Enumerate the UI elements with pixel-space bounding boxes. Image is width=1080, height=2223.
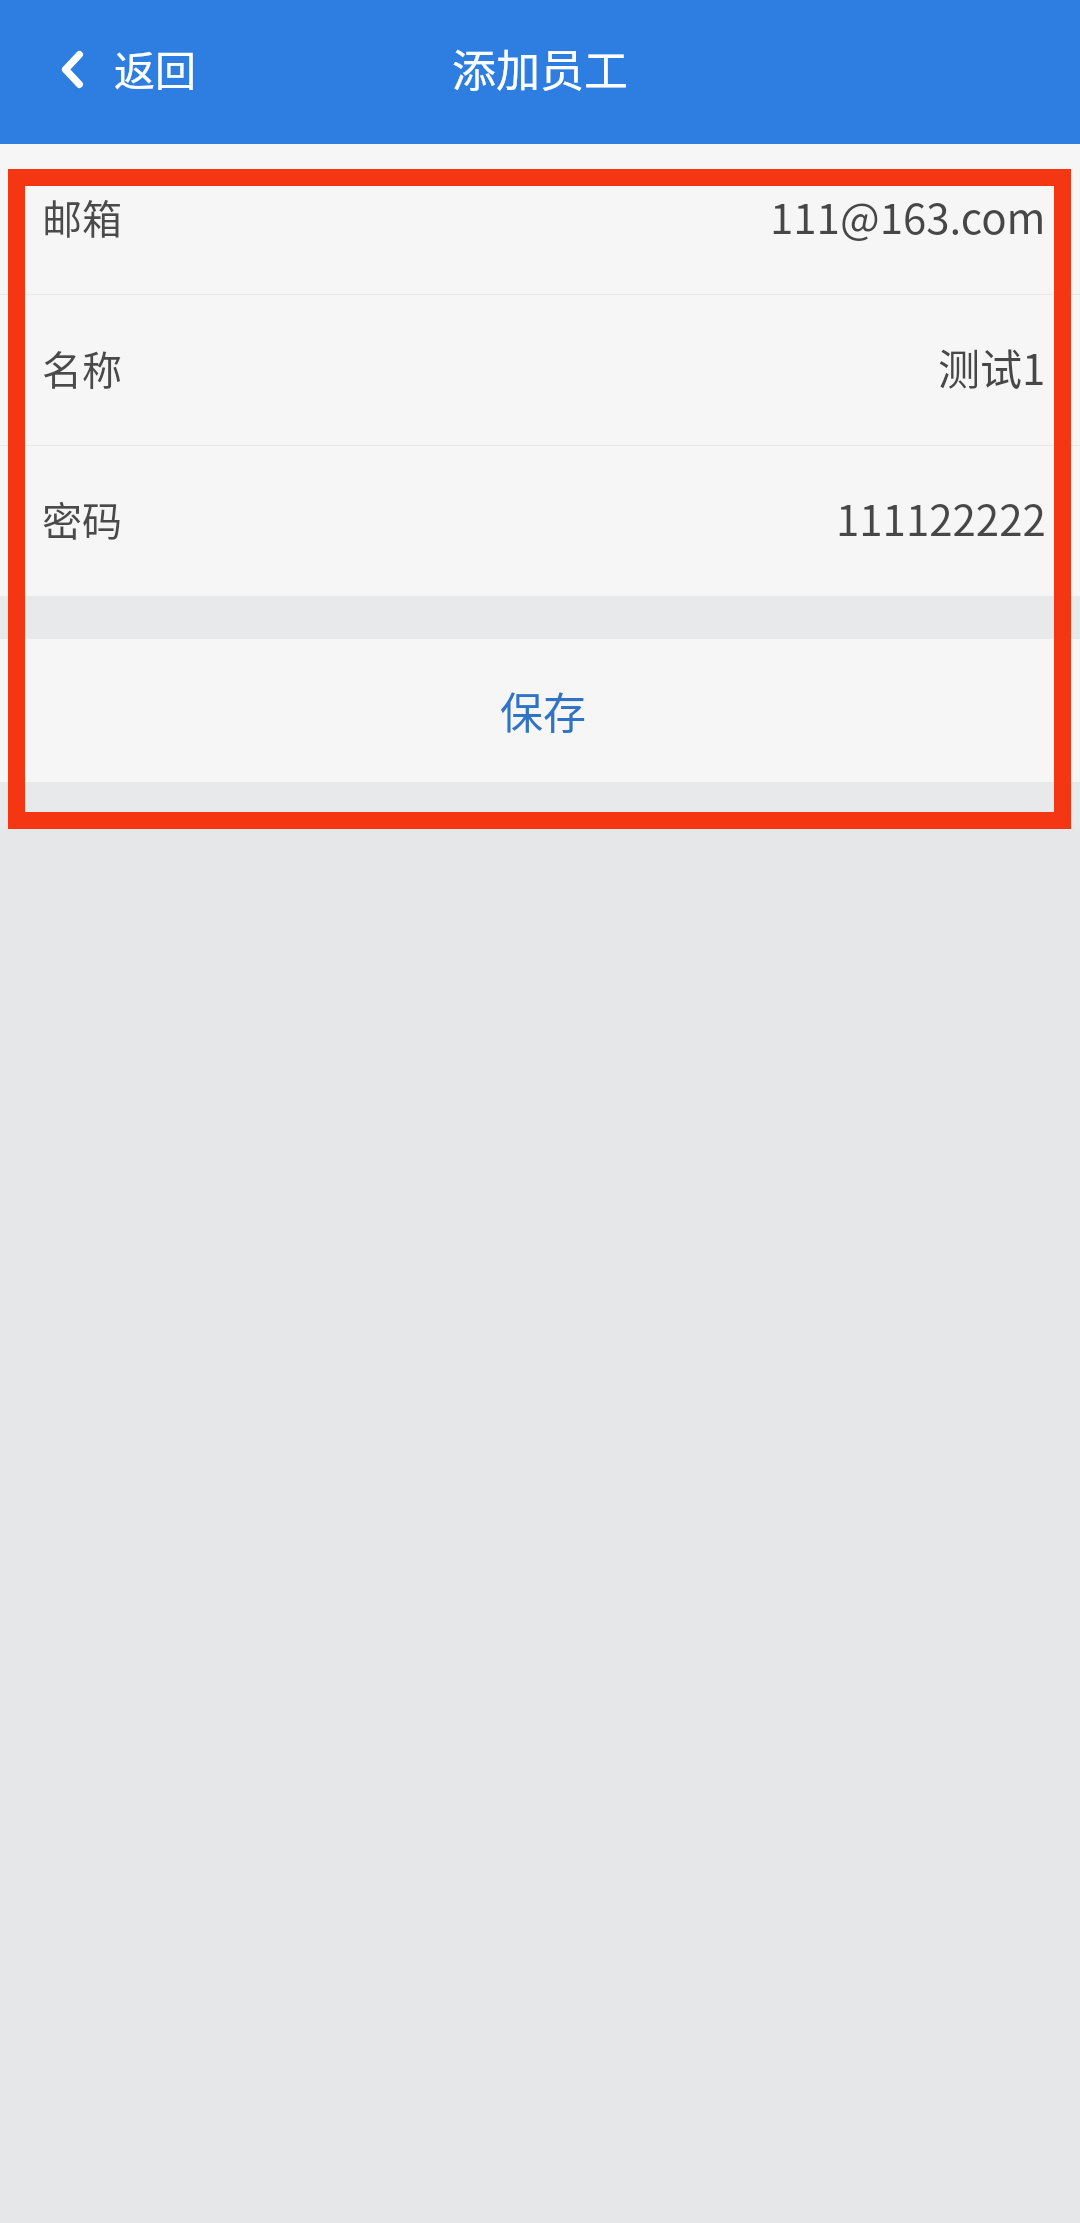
staticText: 名称	[42, 339, 122, 397]
staticText: 邮箱	[42, 188, 122, 246]
button[interactable]: 密码	[0, 446, 1080, 596]
button[interactable]: 保存	[0, 639, 1080, 782]
staticText: 111@163.com	[770, 185, 1046, 246]
staticText: 测试1	[938, 336, 1046, 397]
button[interactable]: 名称	[0, 295, 1080, 445]
button[interactable]: 邮箱	[0, 144, 1080, 294]
staticText: 保存	[500, 679, 586, 741]
staticText: 密码	[42, 490, 122, 548]
staticText: 返回	[114, 38, 196, 97]
button[interactable]: Back	[0, 24, 222, 121]
staticText: 111122222	[836, 487, 1046, 548]
staticText: 添加员工	[452, 36, 628, 100]
